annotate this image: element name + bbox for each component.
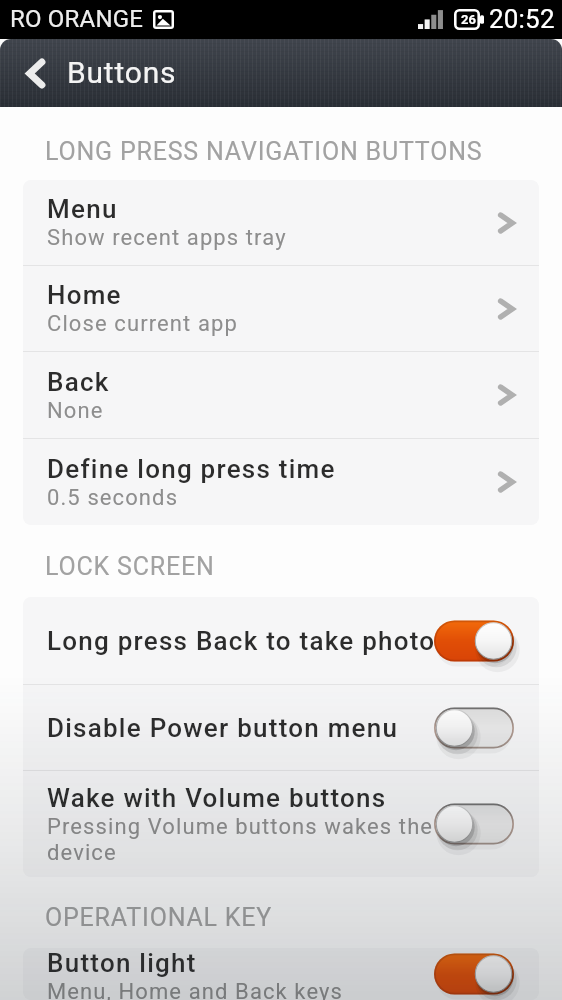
- staticText: Pressing Volume buttons wakes the device: [47, 814, 438, 866]
- button[interactable]: Define long press time: [23, 439, 539, 525]
- staticText: None: [47, 398, 104, 424]
- button[interactable]: Home: [23, 266, 539, 351]
- staticText: 20:52: [489, 4, 555, 34]
- button[interactable]: Long press Back to take photo: [23, 597, 539, 684]
- staticText: Button light: [47, 948, 197, 978]
- staticText: LOCK SCREEN: [45, 552, 215, 581]
- staticText: Define long press time: [47, 454, 336, 484]
- staticText: Wake with Volume buttons: [47, 783, 387, 813]
- button[interactable]: Back: [0, 39, 58, 107]
- button[interactable]: Wake with Volume buttons: [23, 771, 539, 877]
- staticText: Home: [47, 280, 122, 310]
- staticText: Menu, Home and Back keys: [47, 979, 343, 1000]
- button[interactable]: Menu: [23, 180, 539, 265]
- staticText: Disable Power button menu: [47, 713, 399, 743]
- button[interactable]: Back: [23, 352, 539, 438]
- staticText: 0.5 seconds: [47, 485, 179, 511]
- staticText: Menu: [47, 194, 118, 224]
- button[interactable]: Switch off: [434, 796, 514, 852]
- staticText: Show recent apps tray: [47, 225, 287, 251]
- staticText: 26: [461, 12, 476, 27]
- staticText: RO ORANGE: [10, 5, 144, 33]
- button[interactable]: Switch off: [434, 700, 514, 756]
- staticText: Close current app: [47, 311, 238, 337]
- staticText: Long press Back to take photo: [47, 626, 436, 656]
- button[interactable]: Button light: [23, 948, 539, 1000]
- button[interactable]: Switch on: [434, 948, 514, 1000]
- staticText: LONG PRESS NAVIGATION BUTTONS: [45, 137, 483, 166]
- staticText: OPERATIONAL KEY: [45, 903, 273, 932]
- staticText: Back: [47, 367, 110, 397]
- button[interactable]: Switch on: [434, 613, 514, 669]
- button[interactable]: Disable Power button menu: [23, 685, 539, 770]
- staticText: Buttons: [67, 55, 177, 90]
